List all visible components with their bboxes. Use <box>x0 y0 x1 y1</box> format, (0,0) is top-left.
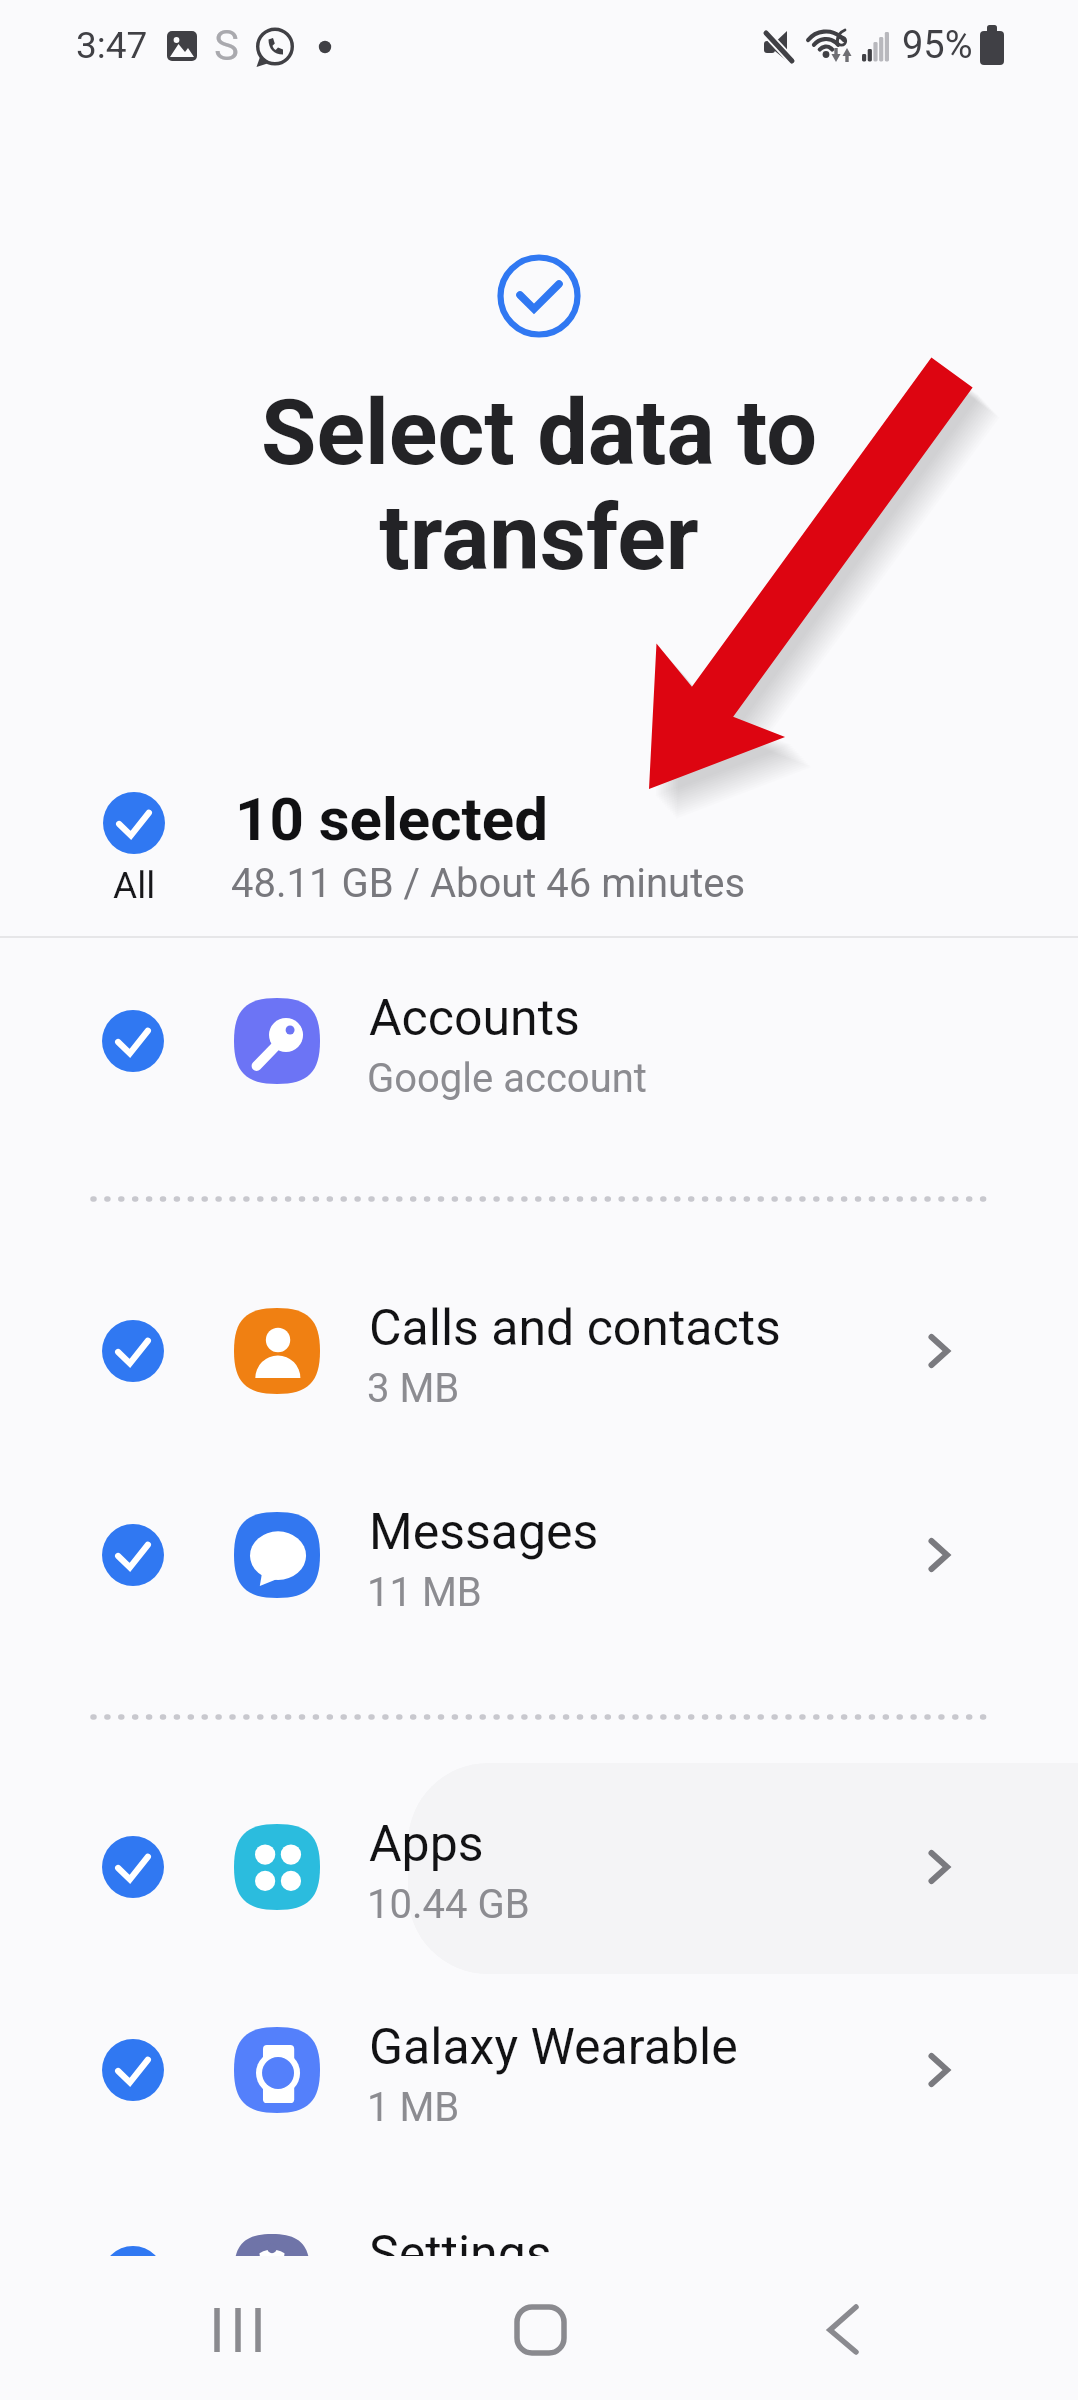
button[interactable]: Home <box>484 2284 594 2356</box>
staticText: Messages <box>369 1503 599 1562</box>
staticText: 10.44 GB <box>367 1881 530 1928</box>
button[interactable]: Messages <box>0 1473 1078 1637</box>
staticText: Settings <box>369 2225 552 2256</box>
button[interactable]: Galaxy Wearable <box>0 1988 1078 2152</box>
staticText: Apps <box>369 1815 484 1874</box>
button[interactable]: Accounts <box>0 959 1078 1123</box>
staticText: 10 selected <box>235 784 549 854</box>
staticText: 48.11 GB / About 46 minutes <box>231 860 746 907</box>
staticText: 95% <box>902 23 973 68</box>
staticText: Calls and contacts <box>369 1299 781 1358</box>
staticText: 1 MB <box>367 2084 460 2131</box>
button[interactable]: Apps <box>0 1785 1078 1949</box>
staticText: All <box>113 864 156 907</box>
button[interactable]: Recent apps <box>180 2284 290 2356</box>
staticText: S <box>214 21 239 70</box>
staticText: 3:47 <box>76 24 148 67</box>
staticText: 3 MB <box>367 1365 460 1412</box>
staticText: Accounts <box>369 989 580 1048</box>
staticText: 11 MB <box>367 1569 482 1616</box>
button[interactable]: All <box>0 756 1078 932</box>
staticText: Google account <box>367 1055 647 1102</box>
button[interactable]: Back <box>790 2284 900 2356</box>
button[interactable]: Calls and contacts <box>0 1269 1078 1433</box>
staticText: Galaxy Wearable <box>369 2018 738 2077</box>
button[interactable]: Settings <box>0 2195 1078 2256</box>
staticText: Select data to transfer <box>0 381 1078 591</box>
